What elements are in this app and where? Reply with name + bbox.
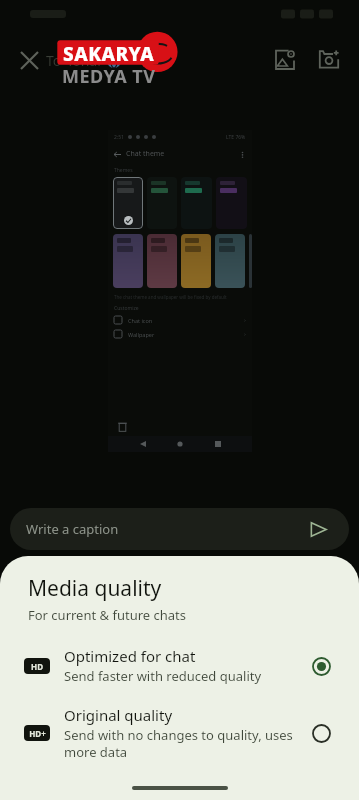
staticText: Chat theme bbox=[126, 149, 165, 159]
staticText: Media quality bbox=[28, 574, 162, 603]
staticText: HD bbox=[31, 661, 43, 672]
staticText: Chat icon bbox=[128, 317, 153, 324]
button[interactable]: Write a caption bbox=[10, 508, 349, 550]
staticText: › bbox=[244, 316, 246, 324]
staticText: Send faster with reduced quality bbox=[64, 667, 262, 685]
staticText: Optimized for chat bbox=[64, 646, 196, 666]
button[interactable]: Close bbox=[8, 39, 50, 81]
button[interactable]: Select Original quality bbox=[303, 715, 339, 751]
staticText: The chat theme and wallpaper will be fix… bbox=[114, 294, 227, 300]
button[interactable]: Add photo bbox=[307, 38, 351, 82]
staticText: › bbox=[244, 330, 246, 338]
staticText: To ional bbox=[46, 51, 101, 70]
staticText: Wallpaper bbox=[128, 331, 155, 338]
staticText: HD+ bbox=[29, 728, 46, 739]
button[interactable]: HD bbox=[0, 642, 359, 689]
staticText: Customize bbox=[114, 305, 139, 312]
button[interactable]: Optimized for chat selected bbox=[303, 648, 339, 684]
button[interactable]: Send bbox=[303, 514, 333, 544]
button[interactable]: HD+ bbox=[0, 701, 359, 765]
staticText: SAKARYA bbox=[63, 41, 155, 67]
button[interactable]: Edit photo bbox=[263, 38, 307, 82]
staticText: Themes bbox=[114, 167, 133, 174]
staticText: Send with no changes to quality, uses mo… bbox=[64, 726, 293, 761]
staticText: Write a caption bbox=[26, 520, 119, 538]
staticText: For current & future chats bbox=[28, 606, 186, 624]
staticText: 2:51 bbox=[114, 134, 124, 141]
staticText: Original quality bbox=[64, 705, 173, 725]
staticText: LTE 76% bbox=[226, 134, 246, 141]
staticText: MEDYA TV bbox=[62, 64, 156, 89]
